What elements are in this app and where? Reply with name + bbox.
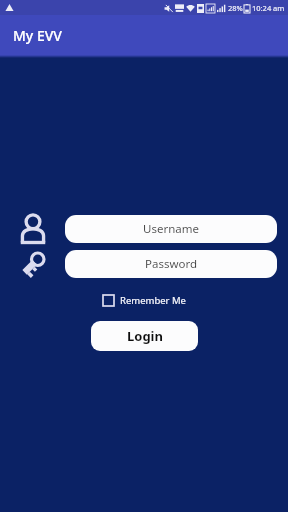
staticText: 28% (228, 3, 243, 13)
staticText: Username (143, 221, 199, 237)
staticText: 10:24 am (252, 3, 285, 13)
other: Password (17, 249, 49, 279)
other: Username (17, 214, 49, 244)
button[interactable]: Login (91, 321, 198, 351)
button[interactable]: Username (65, 215, 277, 243)
staticText: Password (145, 256, 198, 272)
staticText: Login (127, 327, 163, 345)
staticText: Remember Me (120, 294, 186, 307)
button[interactable]: Remember Me (101, 292, 188, 309)
button[interactable]: Password (65, 250, 277, 278)
staticText: My EVV (13, 26, 62, 45)
